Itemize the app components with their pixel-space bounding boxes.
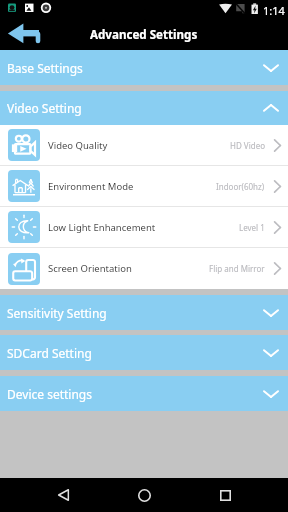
button[interactable]: Device settings — [0, 376, 288, 411]
button[interactable]: Environment Mode — [0, 166, 288, 207]
button[interactable]: Back — [45, 478, 81, 512]
button[interactable]: Home — [126, 478, 162, 512]
staticText: Flip and Mirror — [209, 263, 265, 274]
staticText: Environment Mode — [48, 180, 134, 193]
button[interactable]: Recent apps — [207, 478, 243, 512]
staticText: Low Light Enhancement — [48, 221, 156, 234]
button[interactable]: Video Quality — [0, 125, 288, 166]
staticText: Device settings — [7, 386, 92, 402]
staticText: Advanced Settings — [90, 27, 198, 43]
button[interactable]: Base Settings — [0, 50, 288, 85]
button[interactable]: Video Setting — [0, 91, 288, 125]
staticText: Sensitivity Setting — [7, 305, 107, 321]
staticText: 1:14 — [263, 3, 285, 18]
staticText: HD Video — [230, 140, 265, 151]
staticText: Video Setting — [7, 100, 82, 116]
button[interactable]: SDCard Setting — [0, 335, 288, 370]
button[interactable]: Low Light Enhancement — [0, 207, 288, 248]
button[interactable]: Screen Orientation — [0, 248, 288, 289]
staticText: Level 1 — [239, 222, 265, 233]
button[interactable]: Back — [6, 20, 42, 50]
staticText: Indoor(60hz) — [216, 181, 265, 192]
staticText: Video Quality — [48, 139, 108, 152]
staticText: Screen Orientation — [48, 262, 132, 275]
staticText: Base Settings — [7, 60, 83, 76]
button[interactable]: Sensitivity Setting — [0, 295, 288, 330]
staticText: SDCard Setting — [7, 345, 92, 361]
